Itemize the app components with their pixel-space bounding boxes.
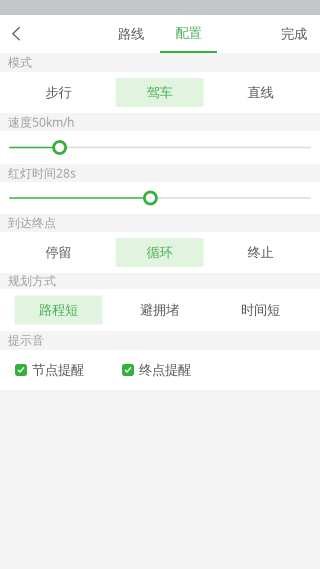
staticText: 驾车 bbox=[146, 84, 172, 101]
staticText: 终点提醒 bbox=[139, 362, 191, 378]
staticText: 路程短 bbox=[39, 302, 78, 318]
staticText: 配置 bbox=[175, 25, 201, 41]
staticText: 避拥堵 bbox=[140, 302, 179, 318]
staticText: 红灯时间28s bbox=[8, 165, 76, 181]
staticText: 终止 bbox=[247, 244, 273, 261]
button[interactable]: 步行 bbox=[8, 72, 109, 113]
button[interactable]: 完成 bbox=[269, 15, 319, 53]
staticText: 模式 bbox=[8, 55, 32, 70]
staticText: 步行 bbox=[45, 84, 71, 101]
button[interactable]: 路程短 bbox=[8, 289, 109, 331]
button[interactable]: 直线 bbox=[210, 72, 311, 113]
button[interactable]: 配置 bbox=[160, 15, 217, 53]
button[interactable]: 时间短 bbox=[210, 289, 311, 331]
button[interactable]: Back bbox=[0, 15, 33, 53]
staticText: 直线 bbox=[247, 84, 273, 101]
staticText: 规划方式 bbox=[8, 274, 56, 288]
staticText: 完成 bbox=[281, 26, 307, 42]
staticText: 路线 bbox=[118, 26, 144, 42]
button[interactable]: 路线 bbox=[106, 15, 156, 53]
button[interactable]: 节点提醒 bbox=[15, 362, 84, 378]
button[interactable]: 驾车 bbox=[109, 72, 210, 113]
staticText: 停留 bbox=[45, 244, 71, 261]
staticText: 提示音 bbox=[8, 333, 44, 348]
staticText: 节点提醒 bbox=[32, 362, 84, 378]
button[interactable]: 终止 bbox=[210, 232, 311, 273]
staticText: 循环 bbox=[146, 244, 172, 261]
staticText: 时间短 bbox=[241, 302, 280, 318]
button[interactable]: 避拥堵 bbox=[109, 289, 210, 331]
staticText: 到达终点 bbox=[8, 216, 56, 230]
button[interactable]: 循环 bbox=[109, 232, 210, 273]
staticText: 速度50km/h bbox=[8, 114, 74, 130]
button[interactable]: 停留 bbox=[8, 232, 109, 273]
button[interactable]: 终点提醒 bbox=[122, 362, 191, 378]
